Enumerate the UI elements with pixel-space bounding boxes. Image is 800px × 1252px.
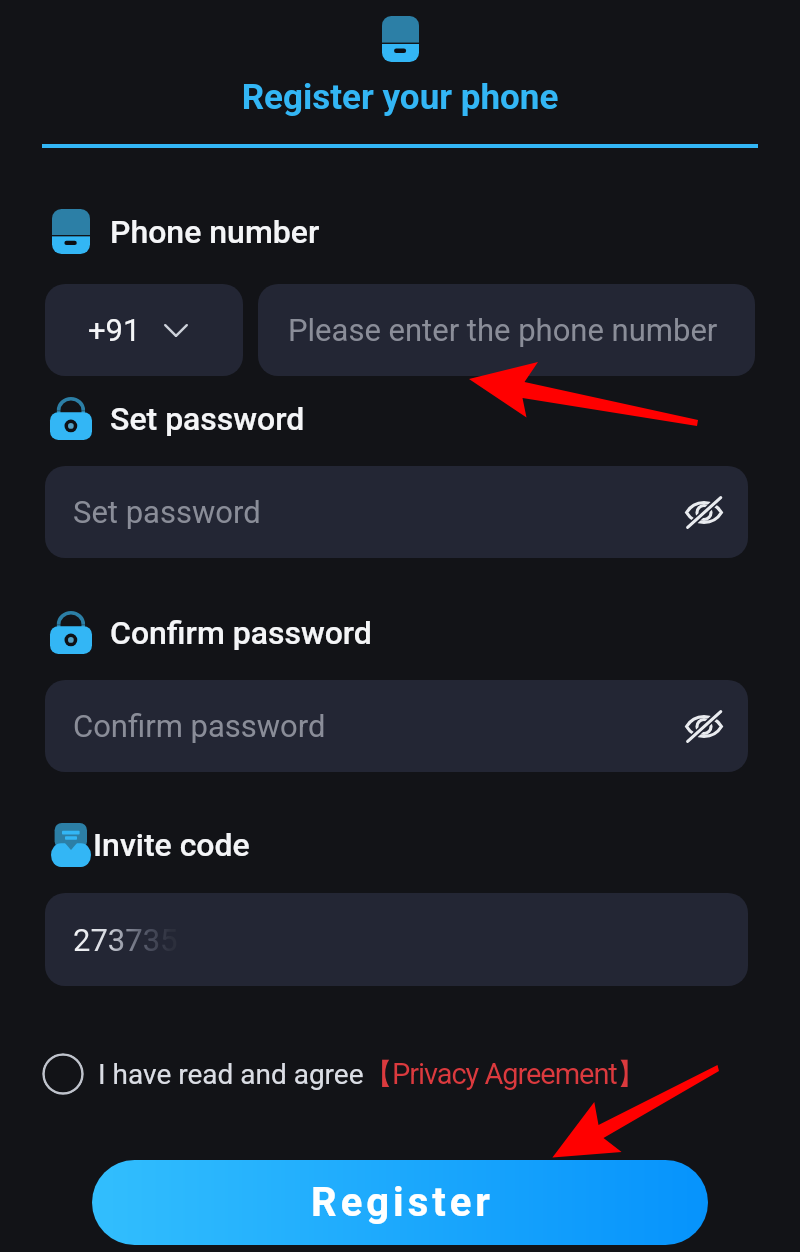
staticText: Confirm password xyxy=(110,614,372,652)
button[interactable]: 273735 xyxy=(45,893,748,986)
button[interactable]: Register xyxy=(92,1160,708,1245)
staticText: 【Privacy Agreement】 xyxy=(364,1056,645,1093)
staticText: Register your phone xyxy=(0,77,800,118)
button[interactable]: Please enter the phone number xyxy=(258,284,755,376)
staticText: Set password xyxy=(73,494,683,530)
staticText: 273735 xyxy=(73,922,178,958)
staticText: Register xyxy=(311,1179,494,1226)
staticText: Please enter the phone number xyxy=(288,312,718,348)
button[interactable]: Confirm password xyxy=(45,680,748,772)
staticText: Invite code xyxy=(93,826,250,864)
button[interactable]: Set password xyxy=(45,466,748,558)
staticText: Phone number xyxy=(110,213,320,251)
button[interactable]: Toggle password visibility xyxy=(683,705,725,747)
button[interactable]: Toggle password visibility xyxy=(683,491,725,533)
staticText: Set password xyxy=(110,400,305,438)
button[interactable]: Agree to privacy agreement xyxy=(42,1053,84,1095)
button[interactable]: +91 xyxy=(45,284,243,376)
button[interactable]: 【Privacy Agreement】 xyxy=(364,1056,645,1093)
staticText: +91 xyxy=(88,312,141,348)
staticText: I have read and agree xyxy=(98,1058,364,1091)
staticText: Confirm password xyxy=(73,708,683,744)
